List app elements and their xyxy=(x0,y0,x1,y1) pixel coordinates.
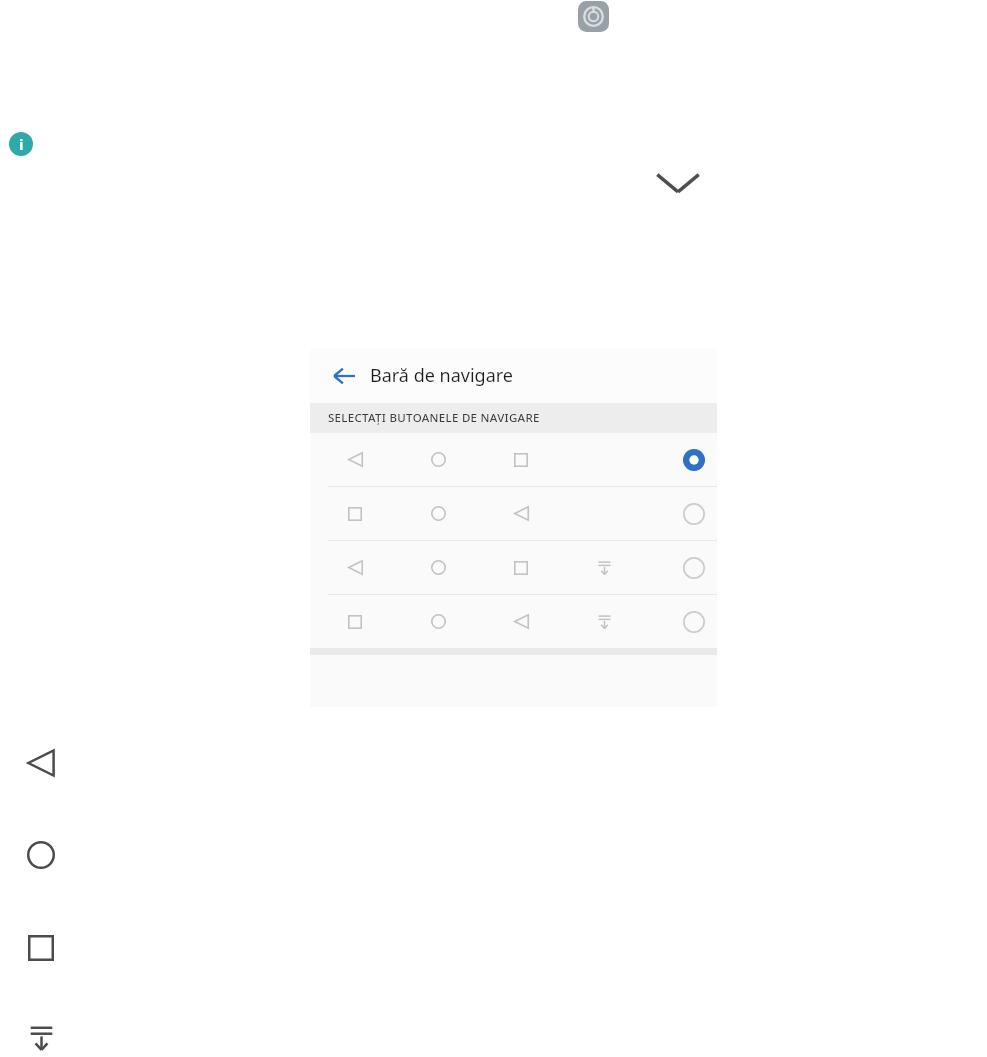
button[interactable]: Expand xyxy=(655,170,701,196)
button[interactable]: App icon xyxy=(578,1,609,32)
staticText: i xyxy=(19,134,24,154)
staticText: Bară de navigare xyxy=(370,363,513,388)
button[interactable]: Information xyxy=(9,132,33,156)
button[interactable]: Recents xyxy=(26,933,56,963)
staticText: SELECTAȚI BUTOANELE DE NAVIGARE xyxy=(328,410,540,426)
button[interactable]: Pull down notification panel xyxy=(26,1022,56,1052)
button[interactable] xyxy=(310,595,717,648)
button[interactable]: Home xyxy=(26,840,56,870)
button[interactable] xyxy=(310,541,717,595)
button[interactable]: Back xyxy=(330,362,358,390)
button[interactable]: Back xyxy=(26,748,56,778)
button[interactable] xyxy=(310,487,717,541)
button[interactable] xyxy=(310,433,717,487)
